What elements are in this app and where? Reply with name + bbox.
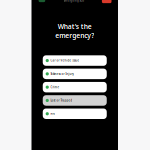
button[interactable]: Lost or Trapped <box>43 95 107 106</box>
button[interactable]: Car or Vehicle Issue <box>43 55 107 66</box>
staticText: Crime <box>50 85 59 89</box>
staticText: Emergency SOS <box>64 0 84 2</box>
button[interactable]: Crime <box>43 82 107 92</box>
staticText: What's the <box>58 22 92 31</box>
button[interactable]: Fire <box>43 108 107 119</box>
staticText: Lost or Trapped <box>50 99 72 102</box>
staticText: emergency? <box>55 31 94 40</box>
button[interactable]: Sickness or Injury <box>43 69 107 79</box>
staticText: Sickness or Injury <box>50 72 73 76</box>
staticText: Fire <box>50 112 55 115</box>
staticText: Car or Vehicle Issue <box>50 59 79 62</box>
